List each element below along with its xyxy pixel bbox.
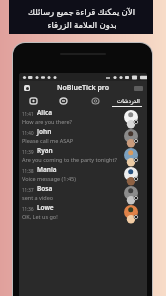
staticText: 11:41 — [22, 111, 34, 117]
button[interactable]: 11:40 — [19, 126, 147, 145]
staticText: John — [37, 127, 52, 136]
staticText: How are you there? — [22, 118, 72, 125]
staticText: 11:36 — [22, 206, 34, 212]
staticText: NoBlueTick pro — [57, 83, 110, 93]
button[interactable]: 11:41 — [19, 107, 147, 126]
staticText: Please call me ASAP — [22, 137, 74, 144]
staticText: Mania — [37, 165, 57, 174]
button[interactable]: Camera — [19, 95, 47, 106]
button[interactable]: 11:38 — [19, 164, 147, 183]
staticText: الدردشات — [117, 98, 140, 104]
button[interactable]: App icon — [22, 83, 32, 93]
staticText: الآن يمكنك قراءة جميع رسائلك — [28, 6, 135, 18]
staticText: 11:39 — [22, 149, 34, 155]
staticText: OK, Let us go! — [22, 213, 58, 220]
staticText: Lowe — [37, 203, 54, 212]
button[interactable]: الدردشات — [110, 95, 147, 106]
staticText: بدون العلامة الزرقاء — [47, 19, 117, 31]
staticText: 11:40 — [22, 130, 34, 136]
staticText: 11:37 — [22, 187, 34, 193]
staticText: Alica — [37, 108, 53, 117]
button[interactable]: Status — [47, 95, 80, 106]
staticText: 11:38 — [22, 168, 34, 174]
staticText: Ryan — [37, 146, 53, 155]
button[interactable]: 11:39 — [19, 145, 147, 164]
staticText: Are you coming to the party tonight? — [22, 156, 117, 163]
staticText: Bosa — [37, 184, 53, 193]
button[interactable]: Calls — [80, 95, 110, 106]
staticText: sent a video — [22, 194, 54, 201]
button[interactable]: More options — [134, 86, 143, 91]
staticText: Voice message (1:45) — [22, 175, 76, 182]
button[interactable]: 11:36 — [19, 202, 147, 221]
button[interactable]: 11:37 — [19, 183, 147, 202]
